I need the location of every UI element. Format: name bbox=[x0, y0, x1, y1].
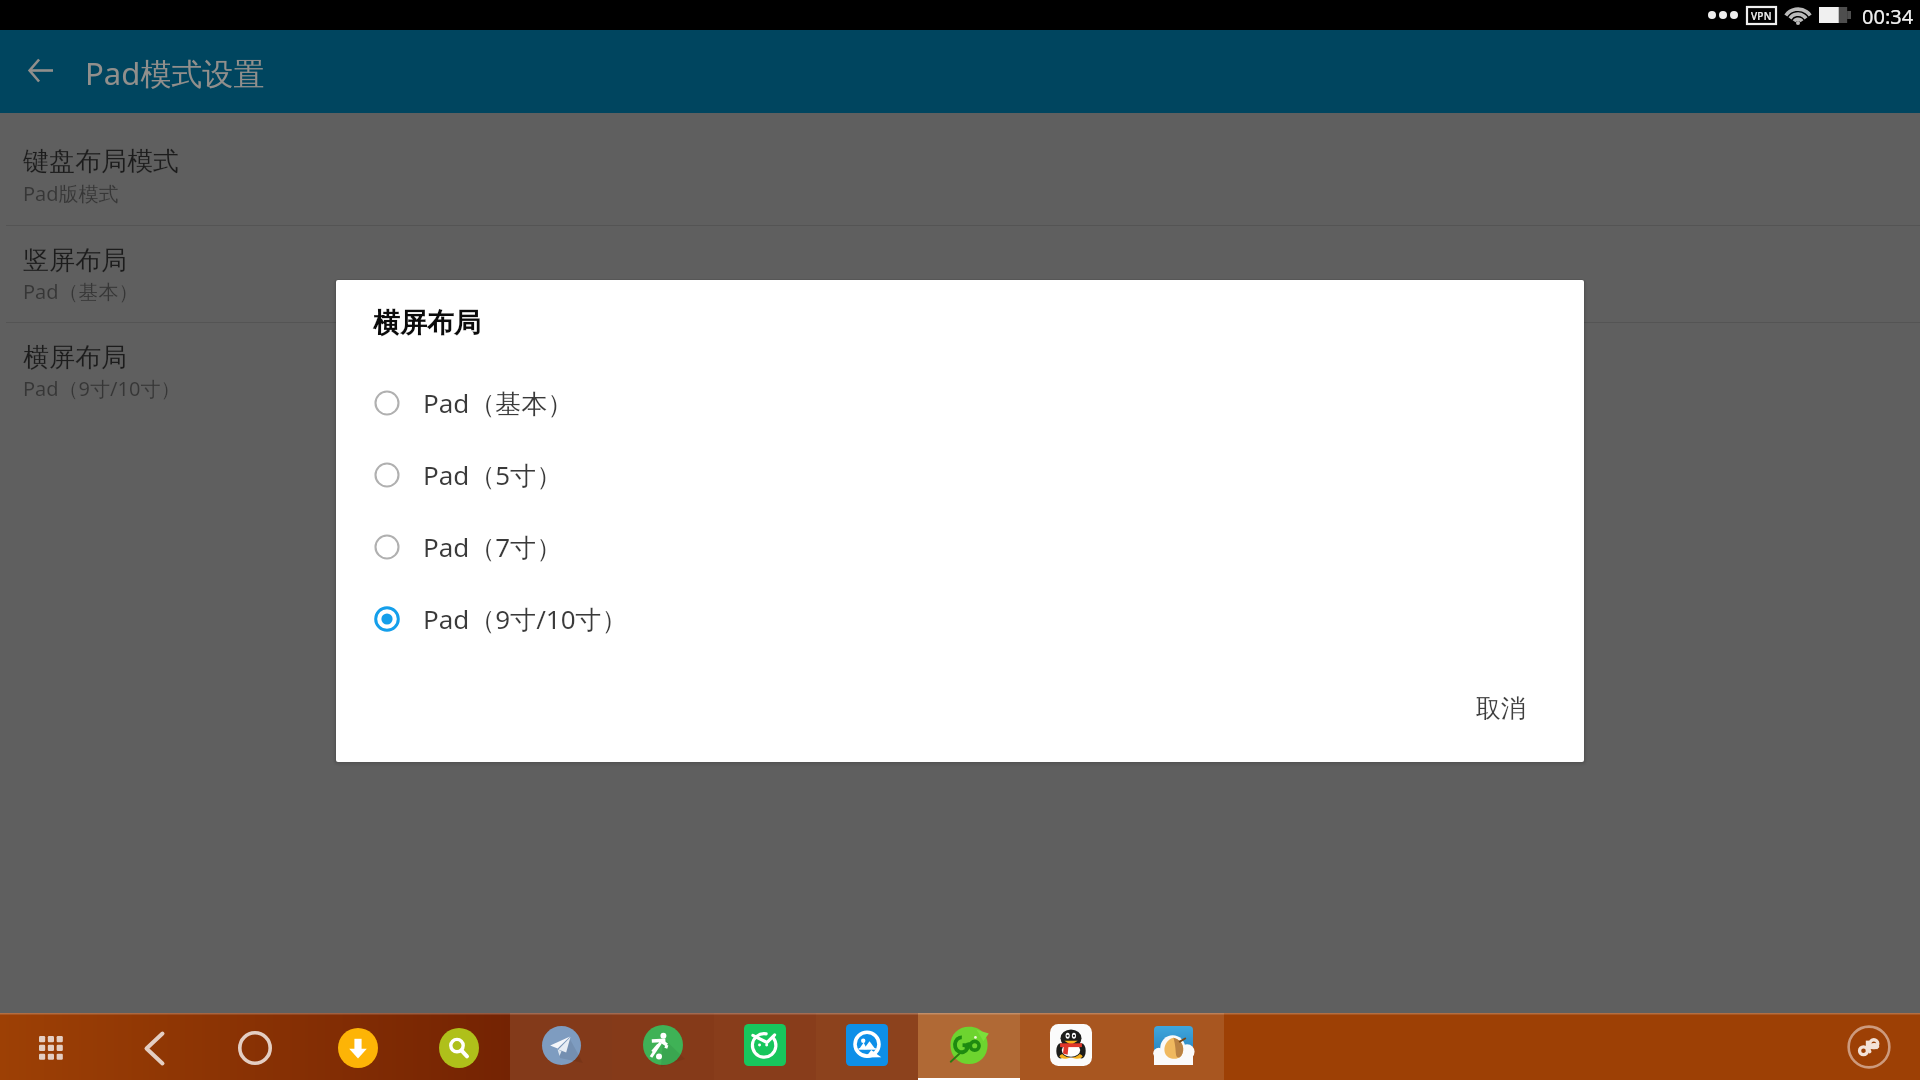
staticText: 横屏布局 bbox=[373, 306, 481, 340]
button[interactable]: Assistant bbox=[1847, 1025, 1891, 1069]
button[interactable]: Pad（7寸） bbox=[336, 511, 1584, 583]
button[interactable]: Go Keyboard bbox=[918, 1013, 1020, 1080]
staticText: 取消 bbox=[1476, 693, 1526, 724]
staticText: Pad（基本） bbox=[423, 385, 574, 421]
button[interactable]: Browser bbox=[1122, 1013, 1224, 1080]
button[interactable]: Gallery bbox=[816, 1013, 918, 1080]
staticText: 横屏布局 bbox=[23, 341, 127, 374]
button[interactable]: 横屏布局 bbox=[0, 323, 1920, 419]
button[interactable]: Apps bbox=[25, 1022, 77, 1074]
staticText: Pad版模式 bbox=[23, 180, 119, 207]
button[interactable]: Sports bbox=[612, 1013, 714, 1080]
staticText: Pad（基本） bbox=[23, 278, 139, 305]
button[interactable]: QQ bbox=[1020, 1013, 1122, 1080]
button[interactable]: Pad（基本） bbox=[336, 367, 1584, 439]
button[interactable]: Back bbox=[128, 1022, 180, 1074]
button[interactable]: Pad（9寸/10寸） bbox=[336, 583, 1584, 655]
staticText: Pad（9寸/10寸） bbox=[23, 375, 181, 402]
staticText: Pad模式设置 bbox=[85, 52, 265, 94]
button[interactable]: 竖屏布局 bbox=[0, 226, 1920, 322]
button[interactable]: Downloads bbox=[332, 1022, 384, 1074]
button[interactable]: Home bbox=[229, 1022, 281, 1074]
staticText: 键盘布局模式 bbox=[23, 145, 179, 178]
button[interactable]: Telegram bbox=[510, 1013, 612, 1080]
button[interactable]: Search bbox=[433, 1022, 485, 1074]
staticText: Pad（5寸） bbox=[423, 457, 563, 493]
button[interactable]: 取消 bbox=[1442, 676, 1560, 740]
button[interactable]: 键盘布局模式 bbox=[0, 113, 1920, 225]
button[interactable]: Pad（5寸） bbox=[336, 439, 1584, 511]
button[interactable]: Cleaner bbox=[714, 1013, 816, 1080]
staticText: 00:34 bbox=[1862, 3, 1914, 30]
staticText: 竖屏布局 bbox=[23, 244, 127, 277]
staticText: VPN bbox=[1751, 9, 1772, 23]
button[interactable]: Back bbox=[15, 44, 67, 96]
staticText: Pad（7寸） bbox=[423, 529, 563, 565]
staticText: Pad（9寸/10寸） bbox=[423, 601, 628, 637]
